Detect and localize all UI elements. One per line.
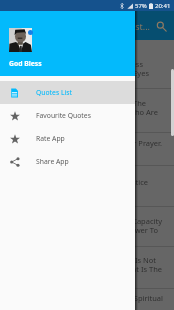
button[interactable]: The Quality Of Your Life Is Not [8,251,174,277]
button[interactable]: Our Lives Begin To Be Spiritual [8,289,174,306]
button[interactable]: Share App [0,150,135,173]
staticText: True Peace Is The Presence Of Justice [8,177,148,187]
button[interactable]: Every Man Must Have The Capacity [8,212,174,238]
staticText: The Function Of Education In The World [8,98,146,108]
staticText: Measured By What Is The [8,264,162,274]
staticText: The Quality Of Your Life Is Not [8,255,156,265]
staticText: You Are Really The Answer To Your Prayer… [8,138,162,148]
staticText: Quotes List... [40,20,150,32]
button[interactable]: Rate App [0,127,135,150]
button[interactable]: Favourite Quotes [0,104,135,127]
staticText: God Bless [9,59,42,68]
button[interactable]: You Are Really The Answer To Your Prayer… [8,134,174,151]
button[interactable]: The Function Of Education In The World [8,94,174,120]
staticText: Our Lives Begin To Be Spiritual [8,293,163,303]
staticText: Share App [36,157,69,166]
staticText: 57% [135,2,147,10]
staticText: Every Man Must Have The Capacity [8,216,162,226]
staticText: Hate Cannot Drive Out Your Eyes [8,68,149,78]
button[interactable]: Search [152,17,170,35]
staticText: Rate App [36,134,65,143]
staticText: To Forgive And The Power To [8,225,158,235]
staticText: Darkness Cannot Drive Out Darkness And [8,59,143,69]
staticText: Is To Teach Those Persons Who Are [8,107,158,117]
button[interactable]: True Peace Is The Presence Of Justice [8,173,174,190]
button[interactable]: Darkness Cannot Drive Out Darkness And [8,55,174,81]
button[interactable]: Quotes List [0,81,135,104]
staticText: Quotes List [36,88,72,97]
staticText: Favourite Quotes [36,111,91,120]
staticText: 20:41 [155,2,171,10]
